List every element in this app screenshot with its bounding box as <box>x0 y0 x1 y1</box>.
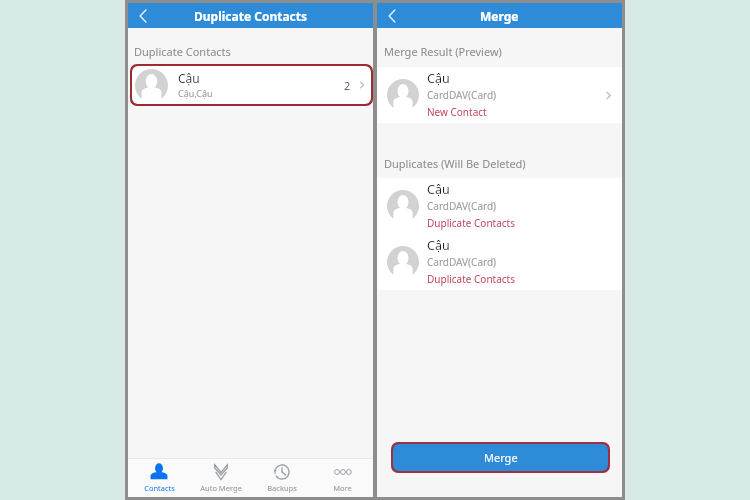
staticText: CardDAV(Card) <box>427 88 497 102</box>
staticText: Merge <box>480 8 519 24</box>
button[interactable]: Cậu <box>132 66 371 104</box>
staticText: Duplicate Contacts <box>427 272 516 286</box>
staticText: Duplicate Contacts <box>194 8 308 24</box>
staticText: Cậu <box>427 181 450 198</box>
staticText: Merge <box>484 450 518 465</box>
staticText: More <box>333 483 352 493</box>
staticText: Cậu,Cậu <box>178 87 213 99</box>
staticText: Cậu <box>427 237 450 254</box>
button[interactable]: Merge <box>393 444 608 471</box>
button[interactable]: Back <box>379 3 405 28</box>
button[interactable]: Cậu <box>377 178 622 234</box>
button[interactable]: Cậu <box>377 234 622 290</box>
button[interactable]: Cậu <box>377 67 622 123</box>
staticText: Auto Merge <box>200 483 242 493</box>
staticText: CardDAV(Card) <box>427 255 497 269</box>
staticText: Backups <box>267 483 297 493</box>
button[interactable]: Backups <box>251 459 312 497</box>
staticText: Cậu <box>427 70 450 87</box>
staticText: Duplicate Contacts <box>427 216 516 230</box>
button[interactable]: Back <box>130 3 156 28</box>
staticText: 2 <box>344 78 351 93</box>
staticText: New Contact <box>427 105 487 119</box>
staticText: Duplicates (Will Be Deleted) <box>384 156 526 171</box>
button[interactable]: Auto Merge <box>190 459 251 497</box>
button[interactable]: More <box>312 459 373 497</box>
staticText: Cậu <box>178 70 200 86</box>
staticText: Merge Result (Preview) <box>384 44 502 59</box>
staticText: Contacts <box>144 483 175 493</box>
staticText: Duplicate Contacts <box>134 44 231 59</box>
staticText: CardDAV(Card) <box>427 199 497 213</box>
button[interactable]: Contacts <box>128 459 190 497</box>
